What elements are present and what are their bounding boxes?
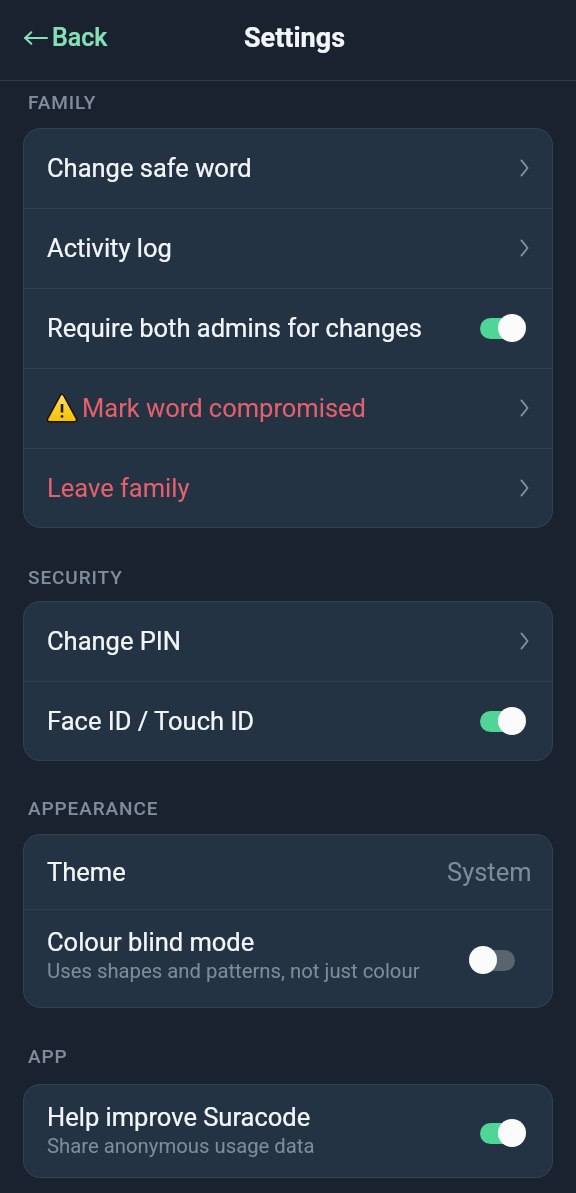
button[interactable]: Toggle on [480,1119,526,1147]
staticText: Require both admins for changes [47,313,422,343]
staticText: FAMILY [28,91,97,113]
button[interactable]: Theme [23,834,553,909]
staticText: Mark word compromised [82,393,366,423]
staticText: Uses shapes and patterns, not just colou… [47,959,420,983]
button[interactable]: Change safe word [23,128,553,208]
button[interactable]: Colour blind mode [23,909,553,1008]
button[interactable]: Mark word compromised [23,368,553,448]
staticText: Theme [47,857,126,887]
staticText: Help improve Suracode [47,1102,311,1132]
button[interactable]: Toggle on [480,314,526,342]
staticText: Colour blind mode [47,927,255,957]
button[interactable]: Face ID / Touch ID [23,681,553,761]
staticText: APP [28,1045,68,1067]
staticText: Settings [244,22,346,54]
staticText: Change safe word [47,153,252,183]
button[interactable]: Help improve Suracode [23,1084,553,1178]
staticText: Activity log [47,233,172,263]
staticText: Change PIN [47,626,181,656]
button[interactable]: Change PIN [23,601,553,681]
button[interactable]: Leave family [23,448,553,528]
staticText: Face ID / Touch ID [47,706,255,736]
button[interactable]: Toggle off [469,946,515,974]
staticText: Share anonymous usage data [47,1134,315,1158]
button[interactable]: Activity log [23,208,553,288]
staticText: SECURITY [28,566,123,588]
staticText: APPEARANCE [28,797,159,819]
staticText: System [447,857,532,887]
staticText: Leave family [47,473,190,503]
staticText: Back [52,23,108,52]
button[interactable]: Back [14,15,118,60]
button[interactable]: Toggle on [480,707,526,735]
button[interactable]: Require both admins for changes [23,288,553,368]
